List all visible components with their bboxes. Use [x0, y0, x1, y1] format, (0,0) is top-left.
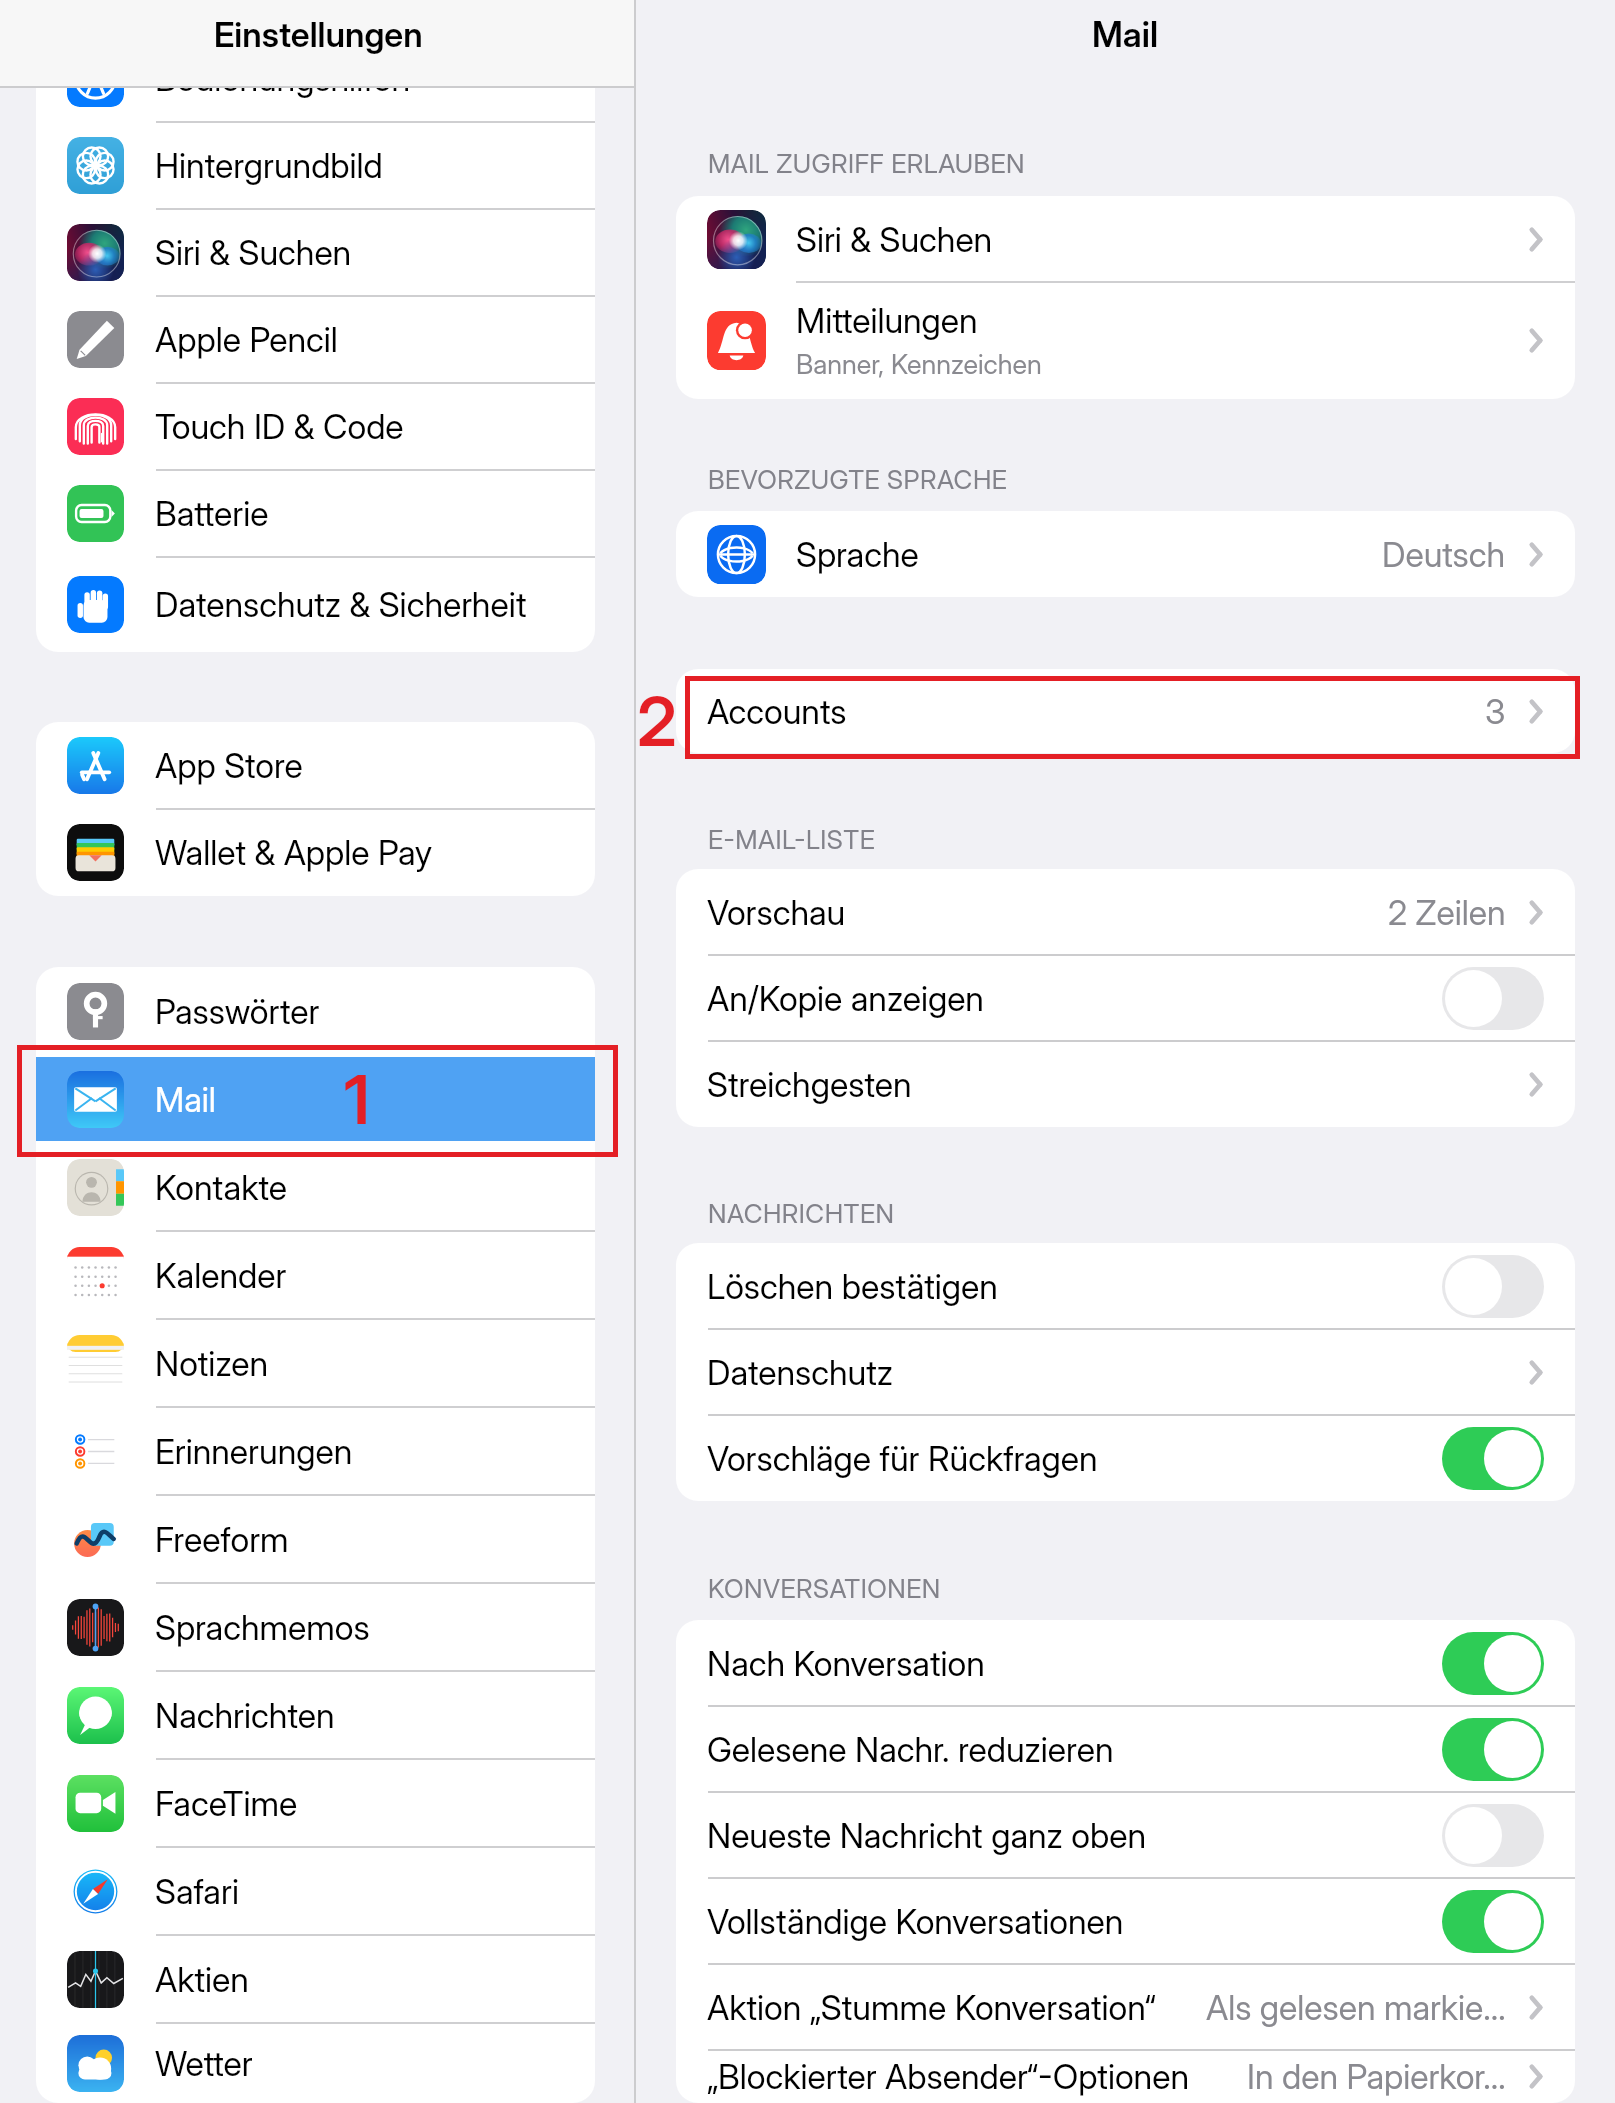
button[interactable]: Neueste Nachricht ganz oben — [676, 1792, 1575, 1878]
staticText: Siri & Suchen — [796, 219, 993, 260]
staticText: Accounts — [707, 691, 847, 732]
staticText: Sprachmemos — [155, 1607, 370, 1648]
staticText: „Blockierter Absender“-Optionen — [707, 2056, 1190, 2097]
staticText: App Store — [155, 745, 303, 786]
button[interactable]: Mail — [36, 1055, 595, 1143]
button[interactable]: Vorschau — [676, 869, 1575, 955]
staticText: Apple Pencil — [155, 319, 338, 360]
staticText: Neueste Nachricht ganz oben — [707, 1815, 1442, 1856]
button[interactable]: Streichgesten — [676, 1041, 1575, 1127]
staticText: Kontakte — [155, 1167, 287, 1208]
staticText: Nachrichten — [155, 1695, 335, 1736]
staticText: Mitteilungen — [796, 300, 978, 341]
button[interactable]: Freeform — [36, 1495, 595, 1583]
staticText: Aktien — [155, 1959, 249, 2000]
staticText: Safari — [155, 1871, 239, 1912]
button[interactable]: Passwörter — [36, 967, 595, 1055]
button[interactable]: Sprachmemos — [36, 1583, 595, 1671]
button[interactable]: Touch ID & Code — [36, 383, 595, 470]
staticText: Sprache — [796, 534, 919, 575]
button[interactable]: An/Kopie anzeigen — [676, 955, 1575, 1041]
button[interactable]: Batterie — [36, 470, 595, 557]
staticText: Kalender — [155, 1255, 287, 1296]
staticText: Nach Konversation — [707, 1643, 1442, 1684]
staticText: Bedienungshilfen — [155, 58, 411, 99]
button[interactable]: Bedienungshilfen — [36, 35, 595, 122]
button[interactable]: Siri & Suchen — [36, 209, 595, 296]
staticText: Banner, Kennzeichen — [796, 348, 1042, 381]
staticText: Erinnerungen — [155, 1431, 353, 1472]
button[interactable]: Vollständige Konversationen — [676, 1878, 1575, 1964]
staticText: Mail — [155, 1079, 216, 1120]
button[interactable]: Hintergrundbild — [36, 122, 595, 209]
staticText: Vorschläge für Rückfragen — [707, 1438, 1442, 1479]
staticText: Löschen bestätigen — [707, 1266, 1442, 1307]
button[interactable]: Aus — [1442, 1255, 1544, 1318]
staticText: MAIL ZUGRIFF ERLAUBEN — [708, 148, 1026, 179]
button[interactable]: Siri & Suchen — [676, 196, 1575, 282]
button[interactable]: Vorschläge für Rückfragen — [676, 1415, 1575, 1501]
button[interactable]: Nach Konversation — [676, 1620, 1575, 1706]
staticText: 3 — [1485, 691, 1506, 732]
button[interactable]: Ein — [1442, 1718, 1544, 1781]
staticText: Als gelesen markie… — [1206, 1987, 1506, 2028]
staticText: 2 Zeilen — [1388, 892, 1506, 933]
staticText: Vollständige Konversationen — [707, 1901, 1442, 1942]
staticText: Touch ID & Code — [155, 406, 404, 447]
button[interactable]: Wetter — [36, 2023, 595, 2103]
staticText: KONVERSATIONEN — [708, 1573, 941, 1604]
button[interactable]: Apple Pencil — [36, 296, 595, 383]
button[interactable]: App Store — [36, 722, 595, 809]
button[interactable]: Ein — [1442, 1427, 1544, 1490]
button[interactable]: Safari — [36, 1847, 595, 1935]
staticText: Passwörter — [155, 991, 320, 1032]
button[interactable]: Wallet & Apple Pay — [36, 809, 595, 896]
staticText: Wallet & Apple Pay — [155, 832, 433, 873]
button[interactable]: Aktion „Stumme Konversation“ — [676, 1964, 1575, 2050]
button[interactable]: Aus — [1442, 1804, 1544, 1867]
staticText: 2 — [637, 680, 677, 762]
staticText: Einstellungen — [214, 14, 423, 55]
staticText: Mail — [1092, 13, 1159, 55]
button[interactable]: Ein — [1442, 1890, 1544, 1953]
staticText: Vorschau — [707, 892, 846, 933]
button[interactable]: Gelesene Nachr. reduzieren — [676, 1706, 1575, 1792]
staticText: In den Papierkor… — [1247, 2056, 1506, 2097]
button[interactable]: Nachrichten — [36, 1671, 595, 1759]
button[interactable]: Kontakte — [36, 1143, 595, 1231]
button[interactable]: Mitteilungen — [676, 282, 1575, 399]
button[interactable]: Datenschutz — [676, 1329, 1575, 1415]
staticText: Datenschutz — [707, 1352, 894, 1393]
button[interactable]: Notizen — [36, 1319, 595, 1407]
staticText: Streichgesten — [707, 1064, 912, 1105]
button[interactable]: Sprache — [676, 511, 1575, 597]
staticText: Wetter — [155, 2043, 253, 2084]
staticText: Deutsch — [1382, 534, 1506, 575]
button[interactable]: „Blockierter Absender“-Optionen — [676, 2050, 1575, 2103]
button[interactable]: Datenschutz & Sicherheit — [36, 557, 595, 652]
staticText: E-MAIL-LISTE — [708, 824, 876, 855]
button[interactable]: Aus — [1442, 967, 1544, 1030]
staticText: Batterie — [155, 493, 269, 534]
button[interactable]: Kalender — [36, 1231, 595, 1319]
staticText: Siri & Suchen — [155, 232, 352, 273]
staticText: 1 — [344, 1058, 370, 1140]
button[interactable]: Erinnerungen — [36, 1407, 595, 1495]
staticText: Hintergrundbild — [155, 145, 383, 186]
staticText: Aktion „Stumme Konversation“ — [707, 1987, 1156, 2028]
staticText: Gelesene Nachr. reduzieren — [707, 1729, 1442, 1770]
button[interactable]: Aktien — [36, 1935, 595, 2023]
staticText: An/Kopie anzeigen — [707, 978, 1442, 1019]
button[interactable]: Ein — [1442, 1632, 1544, 1695]
button[interactable]: Löschen bestätigen — [676, 1243, 1575, 1329]
staticText: BEVORZUGTE SPRACHE — [708, 464, 1008, 495]
staticText: FaceTime — [155, 1783, 298, 1824]
button[interactable]: Accounts — [676, 669, 1575, 753]
staticText: Notizen — [155, 1343, 268, 1384]
button[interactable]: FaceTime — [36, 1759, 595, 1847]
staticText: Datenschutz & Sicherheit — [155, 584, 527, 625]
staticText: Freeform — [155, 1519, 289, 1560]
staticText: NACHRICHTEN — [708, 1198, 895, 1229]
